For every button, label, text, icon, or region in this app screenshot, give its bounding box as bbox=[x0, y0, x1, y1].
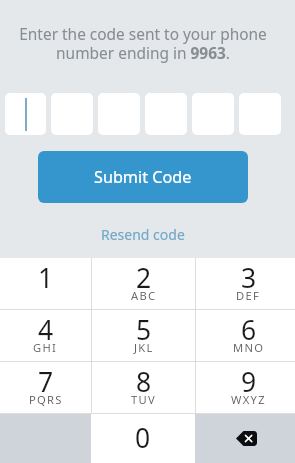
staticText: 4 bbox=[38, 312, 54, 348]
button[interactable]: 8 bbox=[92, 362, 195, 413]
button[interactable]: 9 bbox=[196, 362, 295, 413]
staticText: JKL bbox=[134, 340, 154, 355]
button[interactable]: 5 bbox=[92, 310, 195, 361]
staticText: MNO bbox=[233, 340, 265, 355]
staticText: 0 bbox=[135, 420, 151, 456]
button[interactable]: Resend code bbox=[95, 222, 191, 247]
button[interactable]: 3 bbox=[196, 258, 295, 309]
button[interactable]: 1 bbox=[0, 258, 91, 309]
staticText: 3 bbox=[241, 260, 257, 296]
button[interactable]: 4 bbox=[0, 310, 91, 361]
staticText: ABC bbox=[131, 288, 157, 303]
staticText: 8 bbox=[136, 364, 152, 400]
staticText: Enter the code sent to your phone number… bbox=[9, 23, 277, 63]
staticText: Resend code bbox=[101, 225, 185, 244]
button[interactable]: 6 bbox=[196, 310, 295, 361]
staticText: 2 bbox=[136, 260, 152, 296]
staticText: WXYZ bbox=[231, 392, 266, 407]
button[interactable]: 7 bbox=[0, 362, 91, 413]
staticText: PQRS bbox=[29, 392, 63, 407]
button[interactable]: 0 bbox=[91, 414, 195, 463]
staticText: 7 bbox=[38, 364, 54, 400]
staticText: 1 bbox=[38, 260, 54, 296]
button[interactable]: Submit Code bbox=[38, 151, 248, 203]
staticText: TUV bbox=[131, 392, 157, 407]
button[interactable] bbox=[5, 93, 46, 135]
staticText: DEF bbox=[236, 288, 261, 303]
staticText: GHI bbox=[33, 340, 58, 355]
staticText: Submit Code bbox=[94, 166, 192, 188]
staticText: 5 bbox=[136, 312, 152, 348]
button[interactable]: 2 bbox=[92, 258, 195, 309]
button[interactable]: Backspace bbox=[195, 414, 295, 463]
staticText: 9 bbox=[241, 364, 257, 400]
staticText: 6 bbox=[241, 312, 257, 348]
